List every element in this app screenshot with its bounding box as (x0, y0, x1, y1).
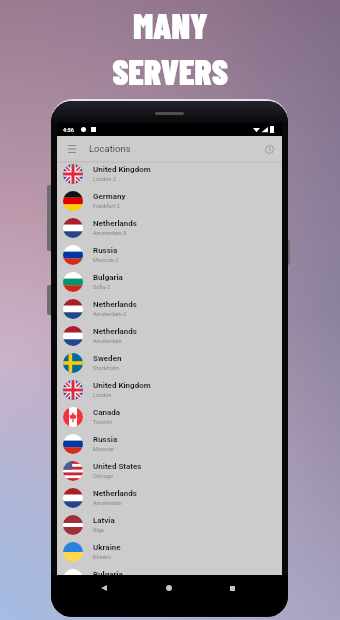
button[interactable]: Sweden (57, 349, 282, 376)
staticText: Toronto (93, 419, 113, 425)
staticText: Locations (89, 143, 131, 154)
button[interactable]: Netherlands (57, 322, 282, 349)
staticText: London (93, 392, 112, 398)
button[interactable]: Netherlands (57, 214, 282, 241)
staticText: Ukraine (93, 543, 121, 552)
button[interactable]: Bulgaria (57, 565, 282, 592)
staticText: Latvia (93, 516, 115, 525)
staticText: United Kingdom (93, 381, 151, 390)
button[interactable]: Home (158, 577, 180, 599)
staticText: Germany (93, 192, 126, 201)
staticText: Kharkiv (93, 554, 112, 560)
button[interactable]: Connection timer (262, 142, 276, 156)
staticText: Bulgaria (93, 570, 123, 579)
staticText: Frankfurt-2 (93, 203, 120, 209)
staticText: Riga (93, 527, 104, 533)
button[interactable]: United Kingdom (57, 376, 282, 403)
staticText: Sofia-2 (93, 284, 111, 290)
button[interactable]: Germany (57, 187, 282, 214)
staticText: Moscow (93, 446, 114, 452)
staticText: Sweden (93, 354, 122, 363)
staticText: Sofia (93, 581, 106, 587)
staticText: Amsterdam (93, 500, 122, 506)
button[interactable]: Latvia (57, 511, 282, 538)
staticText: Amsterdam-3 (93, 230, 127, 236)
staticText: United Kingdom (93, 165, 151, 174)
staticText: 4:56 (63, 127, 74, 133)
staticText: Russia (93, 435, 118, 444)
button[interactable]: Russia (57, 241, 282, 268)
button[interactable]: United Kingdom (57, 160, 282, 187)
button[interactable]: Russia (57, 430, 282, 457)
staticText: MANY (133, 4, 208, 46)
button[interactable]: Ukraine (57, 538, 282, 565)
staticText: SERVERS (112, 50, 228, 92)
staticText: Netherlands (93, 489, 137, 498)
button[interactable]: Open navigation menu (65, 142, 79, 156)
button[interactable]: Netherlands (57, 484, 282, 511)
staticText: Russia (93, 246, 118, 255)
staticText: Moscow-2 (93, 257, 119, 263)
staticText: London-2 (93, 176, 117, 182)
staticText: Bulgaria (93, 273, 123, 282)
staticText: Canada (93, 408, 121, 417)
staticText: United States (93, 462, 142, 471)
staticText: Netherlands (93, 327, 137, 336)
button[interactable]: Canada (57, 403, 282, 430)
staticText: Amsterdam (93, 338, 122, 344)
button[interactable]: Bulgaria (57, 268, 282, 295)
button[interactable]: Recent apps (221, 577, 243, 599)
staticText: Amsterdam-2 (93, 311, 127, 317)
staticText: Netherlands (93, 300, 137, 309)
button[interactable]: United States (57, 457, 282, 484)
button[interactable]: Back (93, 577, 115, 599)
staticText: Chicago (93, 473, 114, 479)
staticText: Stockholm (93, 365, 120, 371)
button[interactable]: Netherlands (57, 295, 282, 322)
staticText: Netherlands (93, 219, 137, 228)
